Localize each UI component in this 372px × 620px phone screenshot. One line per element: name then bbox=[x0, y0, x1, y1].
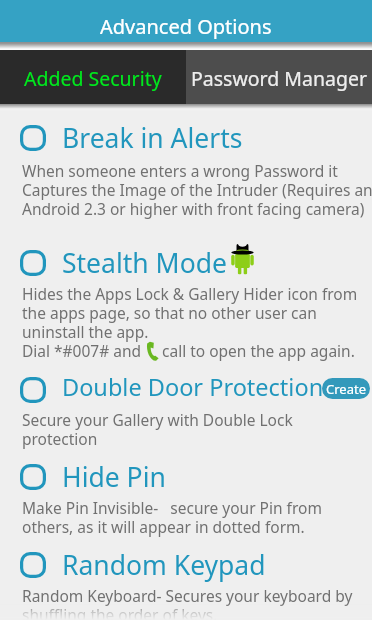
staticText: Dial *#007# and bbox=[22, 340, 142, 361]
button[interactable]: Password Manager bbox=[186, 50, 372, 104]
staticText: Hide Pin bbox=[62, 459, 166, 495]
staticText: Random Keyboard- Secures your keyboard b… bbox=[22, 585, 353, 620]
staticText: Stealth Mode bbox=[62, 245, 227, 281]
staticText: Password Manager bbox=[191, 65, 367, 92]
staticText: Hides the Apps Lock & Gallery Hider icon… bbox=[22, 283, 358, 342]
staticText: Advanced Options bbox=[100, 13, 272, 40]
button[interactable]: Break in Alerts bbox=[0, 113, 372, 163]
button[interactable]: Added Security bbox=[0, 50, 186, 104]
staticText: Double Door Protection bbox=[62, 371, 324, 403]
staticText: When someone enters a wrong Password it … bbox=[22, 160, 372, 219]
button[interactable]: Create bbox=[322, 378, 370, 399]
staticText: Create bbox=[326, 380, 366, 398]
button[interactable]: Hide Pin bbox=[0, 452, 372, 502]
button[interactable]: Stealth Mode bbox=[0, 238, 372, 288]
staticText: call to open the app again. bbox=[162, 340, 355, 361]
button[interactable]: Random Keypad bbox=[0, 540, 372, 590]
staticText: Added Security bbox=[24, 65, 162, 92]
staticText: Random Keypad bbox=[62, 547, 266, 583]
button[interactable]: Double Door Protection bbox=[0, 365, 372, 415]
staticText: Make Pin Invisible- secure your Pin from… bbox=[22, 497, 322, 537]
staticText: Break in Alerts bbox=[62, 120, 243, 156]
staticText: Secure your Gallery with Double Lock pro… bbox=[22, 409, 293, 449]
